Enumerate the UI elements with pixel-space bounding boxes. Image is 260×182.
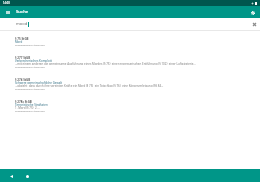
staticText: § 277 StGB bbox=[15, 56, 31, 59]
staticText: Strafgesetzbuch Österreich bbox=[15, 65, 45, 68]
staticText: Suche bbox=[16, 8, 29, 14]
button[interactable]: § 274 StGB bbox=[0, 78, 260, 90]
staticText: § 278c StGB bbox=[15, 100, 32, 103]
button[interactable]: Back bbox=[6, 171, 16, 181]
button[interactable]: Open navigation menu bbox=[2, 7, 13, 18]
staticText: 14:03 bbox=[3, 1, 10, 5]
staticText: § 75 StGB bbox=[15, 37, 29, 40]
staticText: ...absieht, dass durch ihre vereinten Kr… bbox=[15, 84, 164, 87]
staticText: Terroristische Straftaten bbox=[15, 103, 48, 106]
staticText: § 274 StGB bbox=[15, 78, 31, 81]
button[interactable]: § 75 StGB bbox=[0, 37, 260, 46]
button[interactable]: Home bbox=[22, 171, 32, 181]
staticText: Strafgesetzbuch Österreich bbox=[15, 43, 45, 46]
button[interactable]: § 278c StGB bbox=[0, 100, 260, 112]
button[interactable]: § 277 StGB bbox=[0, 56, 260, 68]
staticText: Verbrecherisches Komplott bbox=[15, 59, 52, 62]
button[interactable]: Settings bbox=[247, 7, 258, 18]
button[interactable]: Clear search bbox=[250, 20, 259, 29]
staticText: Strafgesetzbuch Österreich bbox=[15, 87, 45, 90]
staticText: 1. Mord (§ 75), 2. .. bbox=[15, 106, 40, 109]
staticText: mood bbox=[16, 21, 28, 27]
staticText: Schwere gemeinschaftliche Gewalt bbox=[15, 81, 63, 84]
staticText: Strafgesetzbuch Österreich bbox=[15, 109, 45, 112]
staticText: ...mit einem anderen die gemeinsame Ausf… bbox=[15, 62, 196, 65]
staticText: Mord bbox=[15, 40, 23, 43]
